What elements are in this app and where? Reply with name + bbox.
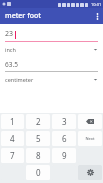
button[interactable]: centimeter [5, 75, 98, 84]
button[interactable]: 4 [1, 131, 24, 146]
button[interactable]: 5 [26, 131, 50, 146]
staticText: 23 [5, 29, 14, 39]
staticText: 5 [36, 133, 41, 144]
button[interactable]: 63.5 [5, 60, 98, 72]
button[interactable]: 23 [5, 29, 98, 42]
other: Select unit [93, 77, 98, 82]
staticText: 2 [36, 116, 41, 127]
staticText: Next [85, 136, 95, 141]
staticText: 9 [62, 150, 67, 161]
staticText: inch [5, 46, 93, 53]
staticText: 1 [10, 116, 15, 127]
staticText: 7 [10, 150, 15, 161]
button[interactable]: Backspace [78, 114, 102, 129]
staticText: 10:01 [91, 2, 102, 7]
button[interactable]: 6 [52, 131, 76, 146]
staticText: meter foot [5, 11, 41, 21]
button[interactable]: 7 [1, 148, 24, 163]
staticText: 0 [36, 167, 41, 178]
staticText: 3 [62, 116, 67, 127]
staticText: 63.5 [5, 60, 18, 69]
staticText: centimeter [5, 76, 93, 83]
staticText: 8 [36, 150, 41, 161]
button[interactable]: 9 [52, 148, 76, 163]
button[interactable]: 2 [26, 114, 50, 129]
button[interactable]: More options [91, 8, 103, 24]
button[interactable]: 1 [1, 114, 24, 129]
staticText: 6 [62, 133, 67, 144]
button[interactable]: 0 [26, 165, 50, 180]
button[interactable]: Next [78, 131, 102, 146]
staticText: 4 [10, 133, 15, 144]
button[interactable]: inch [5, 45, 98, 54]
button[interactable]: 8 [26, 148, 50, 163]
other: Select unit [93, 47, 98, 52]
button[interactable]: 3 [52, 114, 76, 129]
button[interactable]: Settings [78, 165, 102, 180]
